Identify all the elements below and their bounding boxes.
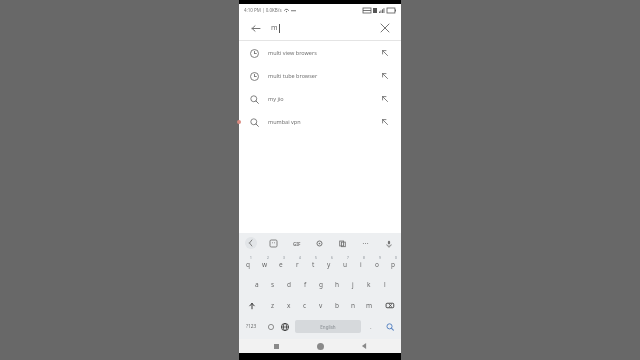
staticText: g [319, 280, 323, 289]
button[interactable]: s [265, 274, 281, 295]
button[interactable]: x [281, 295, 297, 316]
button[interactable]: g [313, 274, 329, 295]
staticText: t [312, 260, 315, 269]
staticText: r [296, 260, 299, 269]
button[interactable]: Insert multi view browers [379, 47, 391, 59]
button[interactable]: 0 [385, 253, 401, 274]
button[interactable]: c [297, 295, 313, 316]
button[interactable]: 3 [273, 253, 289, 274]
staticText: o [375, 260, 379, 269]
button[interactable]: mumbai vpn [239, 110, 401, 133]
button[interactable]: Insert multi tube browser [379, 70, 391, 82]
button[interactable]: Insert mumbai vpn [379, 116, 391, 128]
button[interactable]: z [264, 295, 281, 316]
button[interactable]: 2 [256, 253, 273, 274]
button[interactable]: Home [313, 339, 327, 353]
staticText: multi view browers [268, 49, 317, 56]
staticText: 4:10 PM | 0.0KB/s [244, 7, 282, 13]
button[interactable]: Backspace [377, 295, 401, 316]
staticText: a [255, 280, 259, 289]
staticText: 1 [250, 256, 252, 260]
button[interactable]: 7 [337, 253, 353, 274]
button[interactable]: my jio [239, 87, 401, 110]
staticText: 3 [283, 256, 285, 260]
staticText: u [343, 260, 348, 269]
button[interactable]: 8 [353, 253, 369, 274]
button[interactable]: More options [359, 237, 372, 250]
button[interactable]: Shift [239, 295, 264, 316]
button[interactable]: Change language [278, 316, 292, 337]
staticText: d [287, 280, 291, 289]
staticText: h [335, 280, 340, 289]
button[interactable]: Settings [313, 237, 326, 250]
staticText: 8 [363, 256, 365, 260]
button[interactable]: h [329, 274, 345, 295]
staticText: mumbai vpn [268, 118, 301, 125]
staticText: 0 [395, 256, 397, 260]
button[interactable]: d [281, 274, 297, 295]
button[interactable]: multi view browers [239, 41, 401, 64]
staticText: 4 [299, 256, 301, 260]
staticText: q [246, 260, 250, 269]
button[interactable]: Expand toolbar [245, 237, 257, 249]
staticText: l [384, 280, 386, 289]
button[interactable]: j [345, 274, 361, 295]
staticText: f [304, 280, 307, 289]
staticText: m [271, 23, 278, 33]
staticText: n [351, 301, 356, 310]
button[interactable]: n [345, 295, 361, 316]
button[interactable]: Back [247, 20, 263, 36]
button[interactable]: 9 [369, 253, 385, 274]
staticText: 9 [379, 256, 381, 260]
staticText: w [262, 260, 268, 269]
staticText: x [287, 301, 291, 310]
staticText: c [303, 301, 307, 310]
staticText: b [335, 301, 339, 310]
button[interactable]: 4 [289, 253, 305, 274]
button[interactable]: a [248, 274, 265, 295]
button[interactable]: English [295, 320, 361, 333]
staticText: 6 [331, 256, 333, 260]
staticText: k [367, 280, 371, 289]
button[interactable]: f [297, 274, 313, 295]
staticText: i [360, 260, 362, 269]
button[interactable]: Voice input [382, 237, 395, 250]
button[interactable]: Back [357, 339, 371, 353]
button[interactable]: Insert my jio [379, 93, 391, 105]
button[interactable]: m [361, 295, 377, 316]
staticText: m [366, 301, 373, 310]
button[interactable]: multi tube browser [239, 64, 401, 87]
staticText: p [391, 260, 395, 269]
button[interactable]: v [313, 295, 329, 316]
button[interactable]: Clear [377, 20, 393, 36]
button[interactable]: ?123 [239, 316, 263, 337]
staticText: English [320, 324, 336, 330]
staticText: y [327, 260, 331, 269]
button[interactable]: Recent apps [269, 339, 283, 353]
staticText: z [271, 301, 275, 310]
staticText: s [271, 280, 275, 289]
button[interactable]: Emoji [263, 316, 278, 337]
staticText: 5 [315, 256, 317, 260]
button[interactable]: k [361, 274, 377, 295]
button[interactable]: l [377, 274, 393, 295]
staticText: 2 [267, 256, 269, 260]
staticText: v [319, 301, 323, 310]
staticText: e [279, 260, 283, 269]
staticText: 7 [347, 256, 349, 260]
button[interactable]: Search [378, 316, 401, 337]
button[interactable]: GIF [290, 237, 303, 250]
staticText: my jio [268, 95, 284, 102]
button[interactable]: Clipboard [336, 237, 349, 250]
button[interactable]: Stickers [267, 237, 280, 250]
staticText: GIF [293, 241, 301, 247]
staticText: . [370, 323, 372, 331]
button[interactable]: 5 [305, 253, 321, 274]
button[interactable]: b [329, 295, 345, 316]
staticText: j [352, 280, 354, 289]
staticText: ?123 [246, 323, 257, 330]
staticText: multi tube browser [268, 72, 318, 79]
button[interactable]: 6 [321, 253, 337, 274]
button[interactable]: 1 [239, 253, 256, 274]
